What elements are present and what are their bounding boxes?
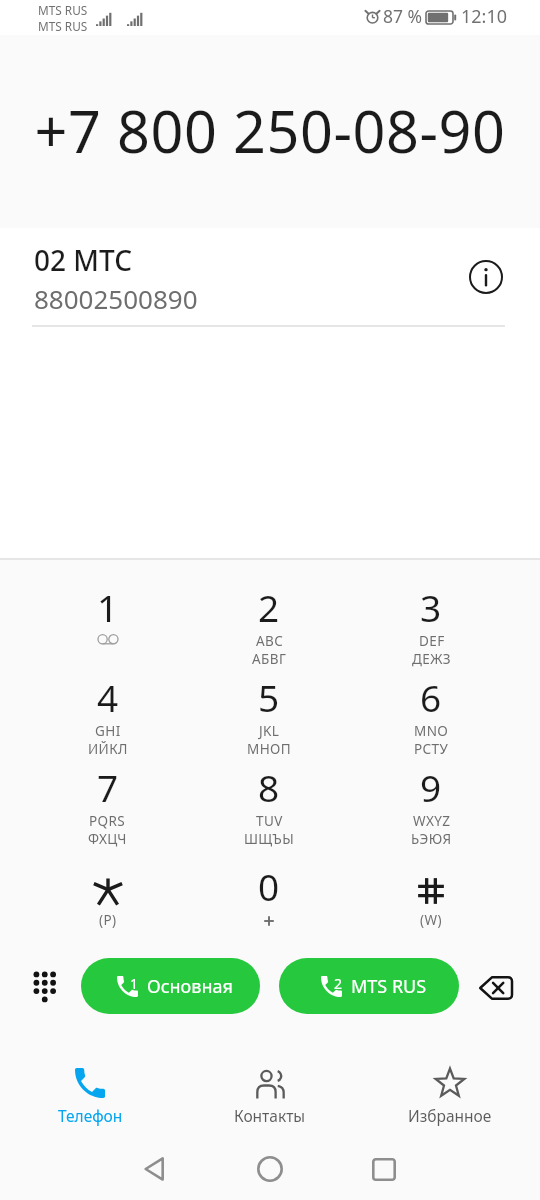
staticText: 7 [97, 762, 119, 812]
staticText: Избранное [408, 1105, 492, 1126]
staticText: +7 800 250-08-90 [34, 92, 506, 170]
staticText: TUV [256, 812, 283, 830]
staticText: АБВГ [252, 650, 287, 668]
button[interactable]: Call details [462, 253, 510, 301]
staticText: JKL [259, 722, 280, 740]
button[interactable]: 9 [350, 764, 512, 854]
button[interactable]: Show dialpad [20, 960, 70, 1010]
button[interactable]: 2 [279, 958, 459, 1014]
staticText: 87 % [383, 4, 423, 28]
staticText: 5 [258, 672, 280, 722]
staticText: MTS RUS [38, 18, 88, 34]
button[interactable]: Телефон [0, 1042, 180, 1135]
staticText: DEF [419, 632, 445, 650]
button[interactable]: Контакты [180, 1042, 360, 1135]
staticText: РСТУ [414, 740, 449, 758]
staticText: Контакты [234, 1105, 306, 1126]
staticText: 0 [258, 861, 280, 911]
staticText: 2 [334, 974, 343, 993]
staticText: 4 [97, 672, 119, 722]
staticText: PQRS [89, 812, 126, 830]
staticText: 02 MTC [34, 241, 132, 279]
staticText: MTS RUS [351, 974, 427, 999]
staticText: MTS RUS [38, 2, 88, 18]
button[interactable]: Избранное [360, 1042, 540, 1135]
staticText: ABC [256, 632, 284, 650]
button[interactable]: 2 [188, 584, 350, 674]
staticText: ЬЭЮЯ [411, 830, 452, 848]
button[interactable]: 1 [27, 584, 188, 674]
button[interactable]: 6 [350, 674, 512, 764]
staticText: МНОП [247, 740, 292, 758]
button[interactable]: Home [245, 1144, 295, 1194]
staticText: 8 [258, 762, 280, 812]
staticText: ФХЦЧ [88, 830, 127, 848]
staticText: MNO [414, 722, 449, 740]
button[interactable]: 1 [81, 958, 260, 1014]
staticText: 6 [420, 672, 442, 722]
button[interactable]: 5 [188, 674, 350, 764]
staticText: GHI [95, 722, 121, 740]
button[interactable]: (W) [350, 863, 512, 953]
button[interactable]: (P) [27, 863, 188, 953]
button[interactable]: Back [130, 1144, 180, 1194]
staticText: ИЙКЛ [88, 740, 128, 758]
staticText: 3 [420, 582, 442, 632]
staticText: Телефон [58, 1105, 123, 1126]
staticText: 1 [130, 974, 139, 993]
staticText: (W) [420, 911, 442, 929]
button[interactable]: 3 [350, 584, 512, 674]
button[interactable]: 4 [27, 674, 188, 764]
button[interactable]: 7 [27, 764, 188, 854]
staticText: 88002500890 [34, 281, 198, 316]
staticText: (P) [99, 911, 117, 929]
button[interactable]: 0 [188, 863, 350, 953]
staticText: 1 [97, 582, 119, 632]
staticText: WXYZ [413, 812, 451, 830]
staticText: 2 [258, 582, 280, 632]
button[interactable]: 8 [188, 764, 350, 854]
staticText: ШЩЪЫ [244, 830, 295, 848]
staticText: ДЕЖЗ [412, 650, 451, 668]
staticText: 9 [420, 762, 442, 812]
button[interactable]: Backspace [470, 963, 520, 1013]
button[interactable]: Recent apps [359, 1144, 409, 1194]
staticText: 12:10 [461, 4, 508, 29]
staticText: Основная [147, 974, 233, 999]
